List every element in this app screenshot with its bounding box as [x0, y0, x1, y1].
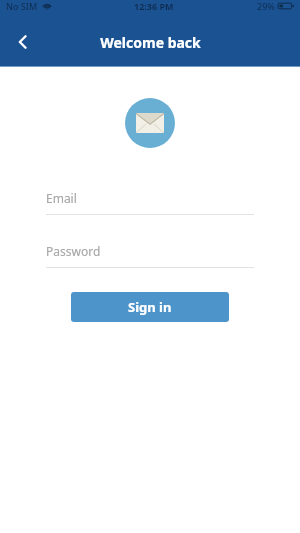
button[interactable]: Password [46, 243, 254, 268]
staticText: Password [46, 243, 101, 259]
staticText: No SIM [6, 0, 38, 12]
staticText: 29% [257, 0, 275, 12]
staticText: Sign in [128, 298, 172, 316]
staticText: Welcome back [100, 33, 201, 52]
button[interactable]: Sign in [71, 292, 229, 322]
staticText: Email [46, 190, 77, 206]
button[interactable]: Back [5, 24, 41, 60]
staticText: 12:36 PM [134, 0, 174, 12]
button[interactable]: Email [46, 190, 254, 215]
